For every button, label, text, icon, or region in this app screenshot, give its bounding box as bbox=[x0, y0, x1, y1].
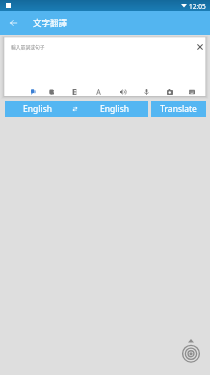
button[interactable]: Voice input bbox=[138, 84, 154, 100]
button[interactable]: Clear text bbox=[193, 40, 206, 53]
button[interactable]: Swap languages bbox=[70, 101, 80, 117]
button[interactable]: Locate bbox=[180, 338, 202, 360]
staticText: English bbox=[23, 103, 52, 115]
button[interactable]: Translate bbox=[151, 101, 206, 117]
button[interactable]: Handwriting bbox=[90, 84, 106, 100]
button[interactable]: Conversation bbox=[25, 84, 41, 100]
staticText: 文字翻譯 bbox=[33, 16, 68, 28]
staticText: 12:05 bbox=[189, 2, 206, 11]
staticText: English bbox=[100, 103, 129, 115]
button[interactable]: English bbox=[80, 101, 148, 117]
button[interactable]: English bbox=[5, 101, 70, 117]
button[interactable]: Back bbox=[4, 13, 23, 32]
staticText: Translate bbox=[160, 103, 197, 115]
button[interactable]: Camera bbox=[162, 84, 178, 100]
staticText: 輸入單詞或句子 bbox=[11, 43, 45, 50]
button[interactable]: Translate document bbox=[43, 84, 59, 100]
button[interactable]: Keyboard bbox=[184, 84, 200, 100]
button[interactable]: Listen bbox=[115, 84, 131, 100]
button[interactable]: Text document bbox=[66, 84, 82, 100]
